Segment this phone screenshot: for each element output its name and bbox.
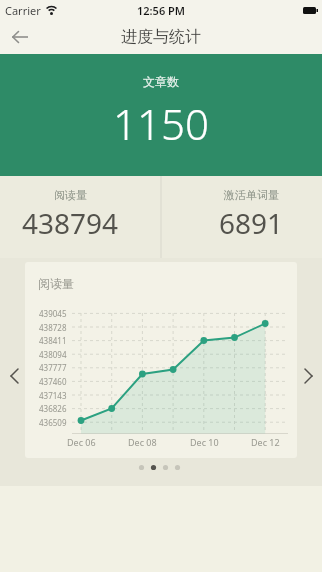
staticText: 阅读量 (38, 276, 74, 291)
staticText: 437777 (39, 362, 67, 373)
staticText: Dec 06 (67, 436, 96, 448)
button[interactable] (2, 361, 26, 391)
staticText: 激活单词量 (224, 188, 279, 202)
staticText: 1150 (113, 95, 209, 152)
staticText: 437460 (39, 376, 67, 387)
staticText: Dec 08 (128, 436, 157, 448)
staticText: 438411 (39, 335, 67, 346)
staticText: 阅读量 (54, 188, 87, 202)
staticText: 6891 (219, 204, 284, 242)
staticText: 12:56 PM (137, 3, 186, 18)
staticText: 437143 (39, 390, 67, 401)
staticText: 438094 (39, 349, 67, 360)
staticText: 436509 (39, 417, 67, 428)
staticText: Dec 10 (190, 436, 219, 448)
button[interactable] (0, 20, 40, 54)
staticText: 文章数 (143, 74, 179, 89)
staticText: 438728 (39, 322, 67, 333)
staticText: 进度与统计 (121, 27, 201, 47)
staticText: 436826 (39, 403, 67, 414)
staticText: 438794 (22, 204, 119, 242)
button[interactable] (296, 361, 320, 391)
staticText: 439045 (39, 308, 67, 319)
staticText: Dec 12 (251, 436, 280, 448)
staticText: Carrier (5, 3, 41, 18)
